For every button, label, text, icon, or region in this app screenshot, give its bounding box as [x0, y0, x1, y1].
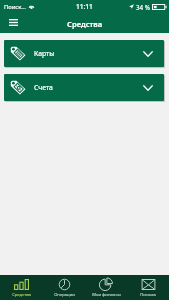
- staticText: Средства: [67, 19, 103, 29]
- staticText: 11:11: [76, 2, 93, 11]
- button[interactable]: Операции: [43, 275, 85, 300]
- staticText: Средства: [12, 292, 31, 298]
- button[interactable]: Open navigation menu: [4, 14, 22, 32]
- button[interactable]: Мои финансы: [85, 275, 127, 300]
- staticText: 34 %: [136, 3, 150, 11]
- staticText: Операции: [54, 292, 75, 298]
- staticText: Мои финансы: [92, 292, 121, 298]
- button[interactable]: Счета: [4, 74, 164, 101]
- staticText: Счета: [34, 83, 53, 92]
- staticText: Карты: [34, 49, 55, 58]
- button[interactable]: Письма: [127, 275, 169, 300]
- staticText: Поиск...: [4, 3, 26, 11]
- button[interactable]: Средства: [0, 275, 43, 300]
- button[interactable]: Карты: [4, 40, 164, 67]
- staticText: Письма: [140, 292, 156, 298]
